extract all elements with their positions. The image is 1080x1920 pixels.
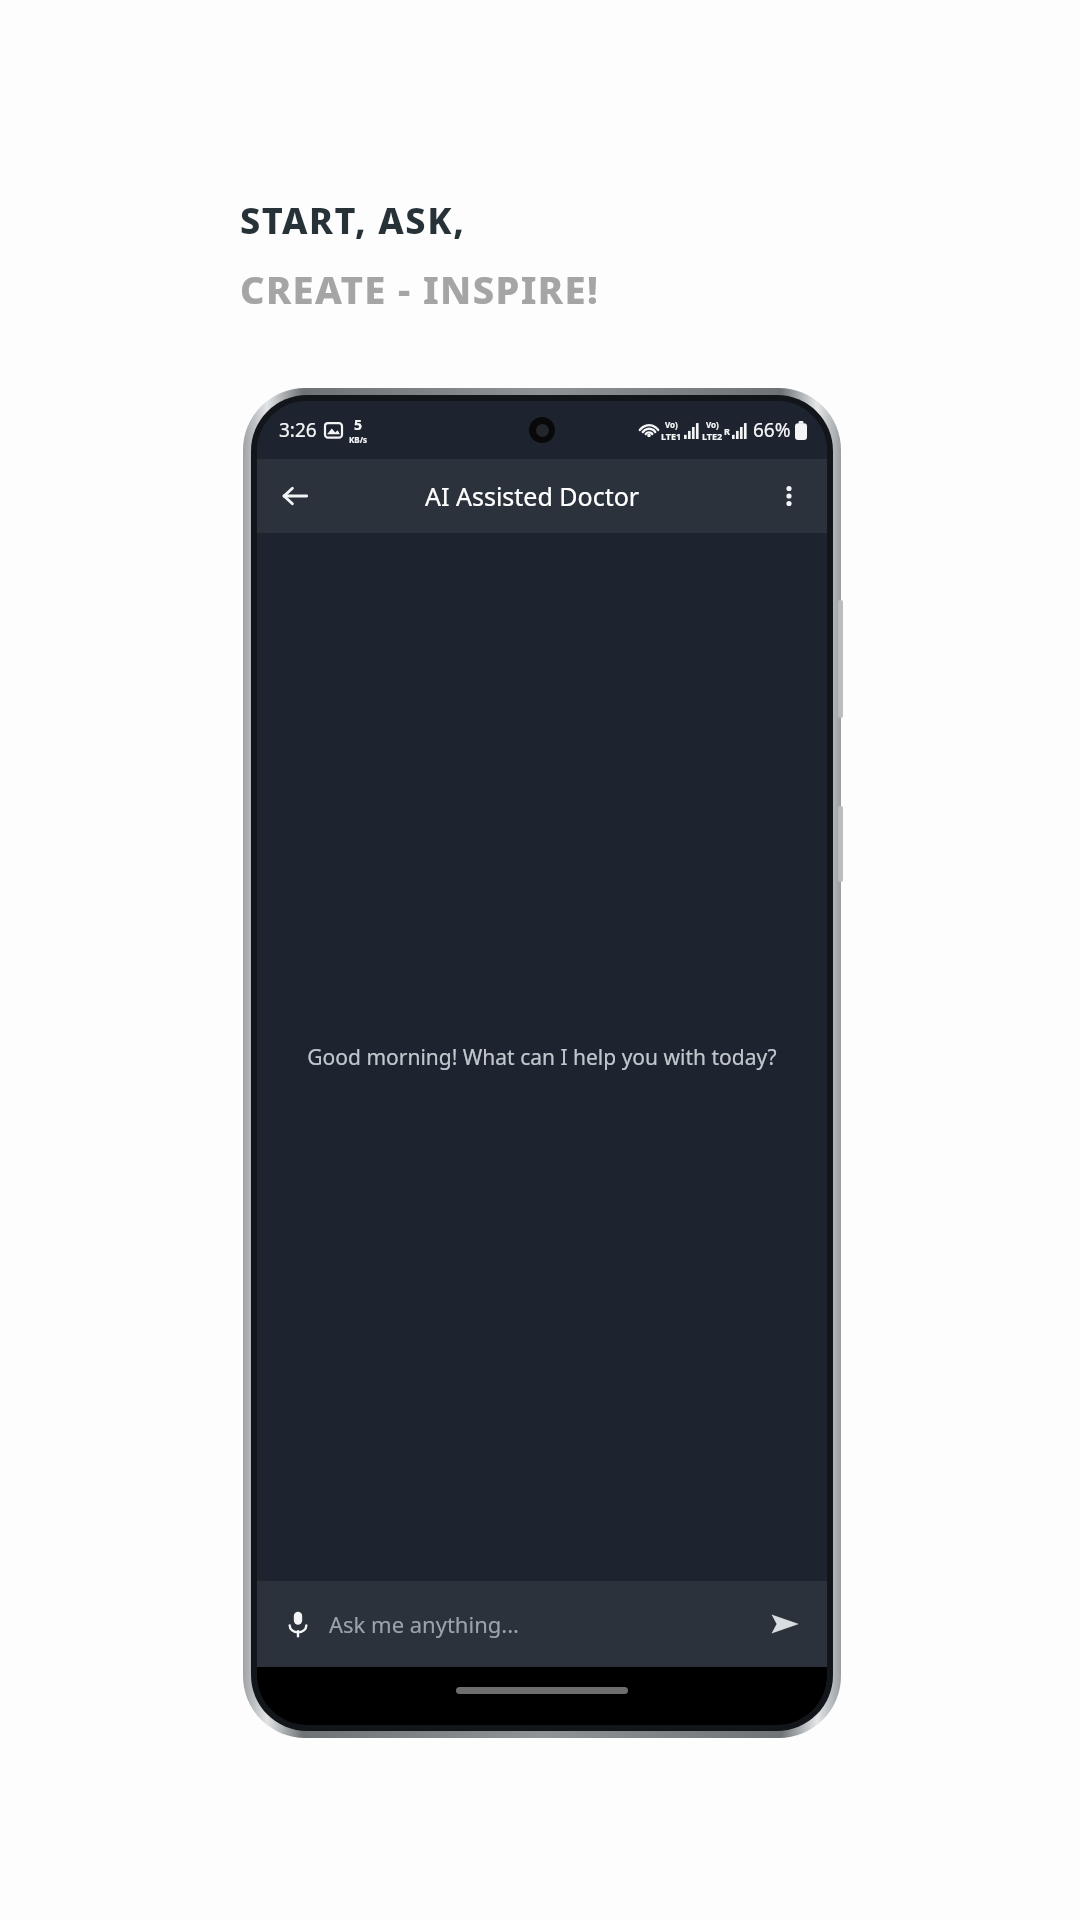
- staticText: 3:26: [279, 417, 317, 443]
- staticText: 66%: [753, 417, 791, 443]
- staticText: AI Assisted Doctor: [425, 479, 640, 513]
- staticText: R: [724, 425, 730, 437]
- staticText: CREATE - INSPIRE!: [240, 263, 600, 315]
- staticText: 5: [354, 415, 363, 434]
- staticText: Ask me anything...: [329, 1609, 519, 1639]
- button[interactable]: Ask me anything...: [323, 1581, 759, 1667]
- staticText: Vo): [665, 419, 678, 430]
- staticText: KB/s: [349, 434, 367, 445]
- staticText: LTE1: [661, 430, 682, 442]
- staticText: Good morning! What can I help you with t…: [307, 1043, 777, 1072]
- button[interactable]: Voice input: [273, 1599, 323, 1649]
- button[interactable]: Send: [759, 1598, 811, 1650]
- button[interactable]: More options: [763, 470, 815, 522]
- staticText: START, ASK,: [240, 196, 466, 245]
- button[interactable]: Back: [269, 470, 321, 522]
- staticText: Vo): [706, 419, 719, 430]
- staticText: LTE2: [702, 430, 723, 442]
